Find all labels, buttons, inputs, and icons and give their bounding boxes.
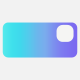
- button[interactable]: Toggle: [3, 22, 77, 57]
